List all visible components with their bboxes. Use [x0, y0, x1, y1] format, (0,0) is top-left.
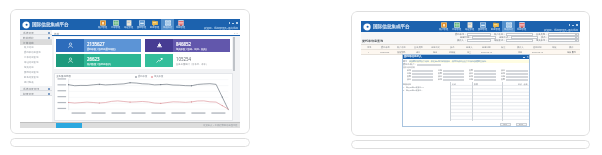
- staticText: 业务总量统计（含本月、本年）: [176, 63, 209, 66]
- staticText: 客户名称: [397, 46, 406, 49]
- staticText: 订单信息查询: [24, 56, 39, 59]
- button[interactable]: 财务结算查询: [20, 75, 52, 80]
- button[interactable]: 报关信息: [20, 65, 52, 70]
- button[interactable]: 费用管理: [135, 19, 148, 30]
- button[interactable]: 客户管理: [437, 21, 450, 32]
- button[interactable]: 订单管理: [109, 19, 122, 30]
- staticText: 报表统计: [504, 28, 514, 31]
- button[interactable]: 财务管理: [489, 21, 502, 32]
- staticText: 2、商品明细列表项目…: [403, 89, 423, 92]
- staticText: ×: [527, 55, 529, 59]
- staticText: 报关信息: [24, 66, 34, 69]
- button[interactable]: 系统设置管理: [20, 86, 52, 91]
- button[interactable]: 单证信息查询: [20, 60, 52, 65]
- staticText: 保存: [503, 123, 508, 126]
- staticText: 类型: [501, 78, 505, 81]
- button[interactable]: 费用信息查询: [20, 70, 52, 75]
- staticText: 2024-05-13: [532, 51, 543, 54]
- button[interactable]: 订单管理: [450, 21, 463, 32]
- staticText: 统计报表: [24, 81, 34, 84]
- staticText: 欢迎您，系统管理员|退出系统: [204, 26, 238, 29]
- staticText: 系统管理: [23, 31, 34, 34]
- staticText: 订单管理: [111, 26, 121, 29]
- staticText: 状态: [469, 72, 473, 75]
- staticText: 基本信息资料: [403, 66, 415, 69]
- staticText: 审核状态：: [494, 39, 506, 42]
- staticText: 客户管理: [98, 26, 108, 29]
- staticText: 26623: [87, 56, 100, 62]
- button[interactable]: 26623: [56, 54, 141, 67]
- button[interactable]: 统计报表: [20, 80, 52, 85]
- button[interactable]: 系统管理: [515, 21, 528, 32]
- staticText: 日期: [501, 75, 505, 78]
- button[interactable]: 保存: [500, 123, 511, 126]
- staticText: 报关单量: [154, 75, 164, 78]
- staticText: 委托单号: [381, 46, 390, 49]
- staticText: 单证管理: [465, 28, 475, 31]
- staticText: 类型: [407, 75, 411, 78]
- button[interactable]: 系统管理: [174, 19, 187, 30]
- staticText: 单号: [501, 72, 505, 75]
- button[interactable]: 数据维护: [20, 35, 52, 40]
- staticText: 更新时间: [533, 46, 542, 49]
- staticText: 取消: [519, 123, 524, 126]
- staticText: 某某贸易: [397, 51, 406, 54]
- staticText: 状态: [438, 75, 442, 78]
- staticText: 单证信息查询: [24, 61, 39, 64]
- staticText: 委托单量: [138, 75, 148, 78]
- staticText: 报关单号：: [536, 39, 548, 42]
- staticText: 中文输入 | 工具栏帮助信息显示区: [203, 124, 238, 127]
- button[interactable]: 报表统计: [502, 21, 515, 32]
- staticText: 审核: [552, 46, 557, 49]
- staticText: 委托单号：: [455, 33, 467, 36]
- staticText: 订单信息: [23, 41, 34, 44]
- staticText: 846852: [176, 41, 192, 47]
- staticText: WT20240: [380, 51, 390, 54]
- button[interactable]: 订单信息: [20, 40, 52, 45]
- staticText: 业务类型: [414, 46, 423, 49]
- staticText: 报表统计: [163, 26, 173, 29]
- staticText: 委托单信息查询: [362, 39, 383, 43]
- staticText: 状态: [501, 69, 505, 72]
- button[interactable]: 105254: [145, 54, 230, 67]
- button[interactable]: 单证管理: [122, 19, 135, 30]
- staticText: 单号: [438, 78, 442, 81]
- staticText: 客户管理: [439, 28, 449, 31]
- staticText: 状态: [450, 46, 455, 49]
- button[interactable]: 权限管理: [20, 91, 52, 96]
- staticText: 委托方/客户：: [403, 63, 417, 66]
- staticText: 进口: [416, 51, 421, 54]
- other: Logo: [363, 23, 371, 31]
- staticText: 105254: [176, 56, 192, 62]
- button[interactable]: 订单信息查询: [20, 55, 52, 60]
- staticText: 国际信息集成平台: [373, 24, 410, 30]
- staticText: 操作人：: [457, 39, 467, 42]
- staticText: 2024-05-12: [481, 51, 492, 54]
- button[interactable]: 报表统计: [161, 19, 174, 30]
- button[interactable]: 委托单信息查询: [20, 50, 52, 55]
- staticText: 请按要求填写以下信息，带红色*号为必填项目，填写完成后点击下方保存按钮提交保存。: [409, 60, 489, 63]
- button[interactable]: 取消: [516, 123, 527, 126]
- staticText: 状态：: [541, 36, 548, 39]
- staticText: 费用信息查询: [24, 71, 39, 74]
- button[interactable]: 系统管理: [20, 30, 52, 35]
- button[interactable]: 费用管理: [476, 21, 489, 32]
- button[interactable]: 财务管理: [148, 19, 161, 30]
- staticText: 财务管理: [150, 26, 160, 29]
- button[interactable]: 2135627: [56, 39, 141, 52]
- staticText: 备注: [501, 46, 506, 49]
- staticText: 财务结算查询: [24, 76, 39, 79]
- button[interactable]: 单证管理: [463, 21, 476, 32]
- staticText: 费用管理: [137, 26, 147, 29]
- button[interactable]: 客户信息: [20, 45, 52, 50]
- button[interactable]: 846852: [145, 39, 230, 52]
- staticText: 单号: [469, 75, 473, 78]
- staticText: 数据维护: [23, 36, 34, 39]
- staticText: 业务类型：: [536, 33, 548, 36]
- button[interactable]: 客户管理: [96, 19, 109, 30]
